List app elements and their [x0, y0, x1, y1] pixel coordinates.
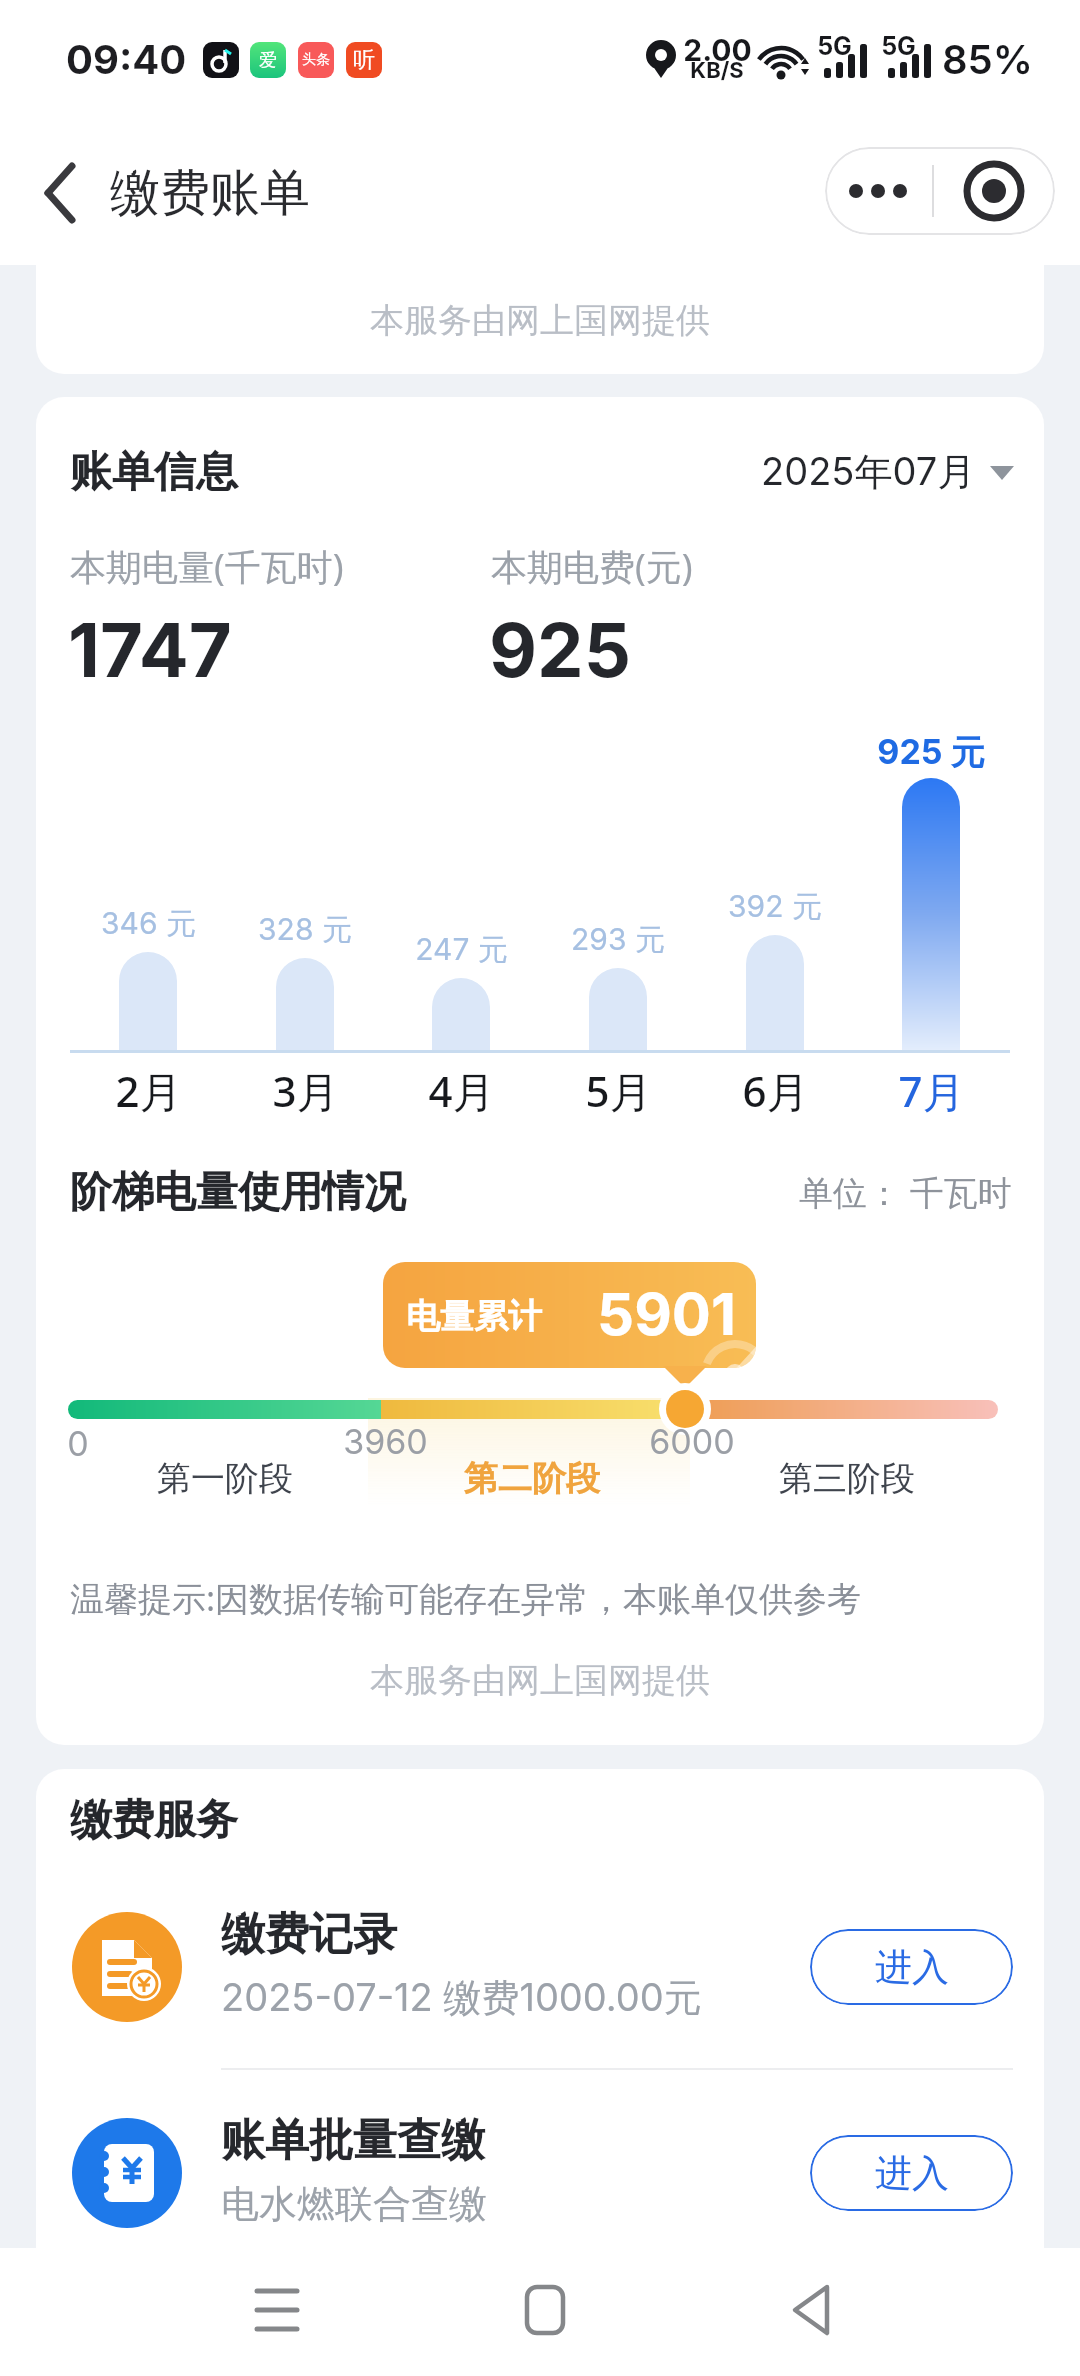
staticText: 电量累计 — [406, 1295, 542, 1338]
staticText: 5G — [881, 31, 916, 61]
staticText: 缴费账单 — [110, 162, 310, 225]
staticText: 0 — [67, 1423, 89, 1464]
button[interactable]: 2025年07月 — [740, 440, 1030, 504]
staticText: 本期电量(千瓦时) — [70, 542, 344, 591]
staticText: 328 元 — [258, 911, 352, 949]
staticText: 第一阶段 — [157, 1457, 293, 1500]
staticText: 本期电费(元) — [491, 542, 693, 591]
staticText: 2月 — [115, 1062, 182, 1119]
staticText: 单位： 千瓦时 — [799, 1169, 1012, 1215]
staticText: 925 元 — [877, 731, 985, 774]
staticText: 247 元 — [415, 931, 508, 969]
button[interactable] — [940, 147, 1055, 235]
staticText: 温馨提示:因数据传输可能存在异常，本账单仅供参考 — [70, 1575, 862, 1621]
staticText: 阶梯电量使用情况 — [70, 1166, 406, 1219]
staticText: 09:40 — [66, 35, 187, 83]
staticText: 293 元 — [571, 921, 665, 959]
button[interactable] — [36, 1879, 1044, 2055]
staticText: 5月 — [585, 1062, 652, 1119]
staticText: 5901 — [597, 1279, 736, 1349]
staticText: 2025-07-12 缴费1000.00元 — [221, 1974, 702, 2022]
staticText: 3960 — [343, 1421, 428, 1462]
button[interactable] — [505, 2270, 585, 2350]
staticText: 账单批量查缴 — [221, 2113, 485, 2168]
staticText: 头条 — [302, 51, 330, 69]
staticText: 缴费记录 — [221, 1907, 397, 1962]
staticText: 1747 — [68, 605, 232, 685]
staticText: 电水燃联合查缴 — [221, 2180, 487, 2228]
staticText: 本服务由网上国网提供 — [370, 299, 710, 342]
button[interactable] — [24, 150, 104, 236]
button[interactable] — [237, 2270, 317, 2350]
staticText: 346 元 — [101, 905, 196, 943]
staticText: 缴费服务 — [70, 1794, 238, 1847]
button[interactable] — [825, 147, 940, 235]
staticText: 本服务由网上国网提供 — [370, 1659, 710, 1702]
staticText: 6月 — [742, 1062, 809, 1119]
staticText: 3月 — [272, 1062, 339, 1119]
staticText: 爱 — [259, 49, 277, 72]
staticText: 4月 — [428, 1062, 495, 1119]
staticText: KB/S — [690, 57, 744, 84]
staticText: 进入 — [875, 1944, 949, 1991]
button[interactable] — [772, 2270, 852, 2350]
button[interactable] — [36, 2085, 1044, 2261]
staticText: 2025年07月 — [761, 448, 976, 496]
staticText: 第三阶段 — [779, 1457, 915, 1500]
button[interactable]: 进入 — [810, 2135, 1013, 2211]
staticText: 账单信息 — [70, 446, 238, 499]
staticText: 85% — [942, 35, 1033, 83]
staticText: 925 — [489, 605, 631, 685]
staticText: 听 — [353, 46, 375, 74]
staticText: 2.00 — [683, 32, 752, 68]
staticText: 7月 — [898, 1062, 965, 1119]
staticText: 392 元 — [728, 888, 822, 926]
staticText: 第二阶段 — [464, 1457, 600, 1500]
staticText: 5G — [817, 31, 852, 61]
staticText: 进入 — [875, 2150, 949, 2197]
staticText: 6000 — [649, 1421, 735, 1462]
button[interactable]: 进入 — [810, 1929, 1013, 2005]
